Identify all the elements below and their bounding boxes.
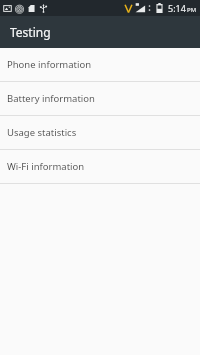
button[interactable]: Usage statistics: [0, 116, 200, 149]
staticText: Usage statistics: [7, 126, 77, 139]
button[interactable]: Phone information: [0, 48, 200, 81]
staticText: Testing: [10, 24, 51, 40]
staticText: Wi-Fi information: [7, 160, 85, 173]
staticText: Battery information: [7, 92, 95, 105]
button[interactable]: Wi-Fi information: [0, 150, 200, 183]
button[interactable]: Battery information: [0, 82, 200, 115]
staticText: Phone information: [7, 58, 92, 71]
staticText: PM: [187, 6, 197, 14]
staticText: 5:14: [168, 2, 186, 14]
